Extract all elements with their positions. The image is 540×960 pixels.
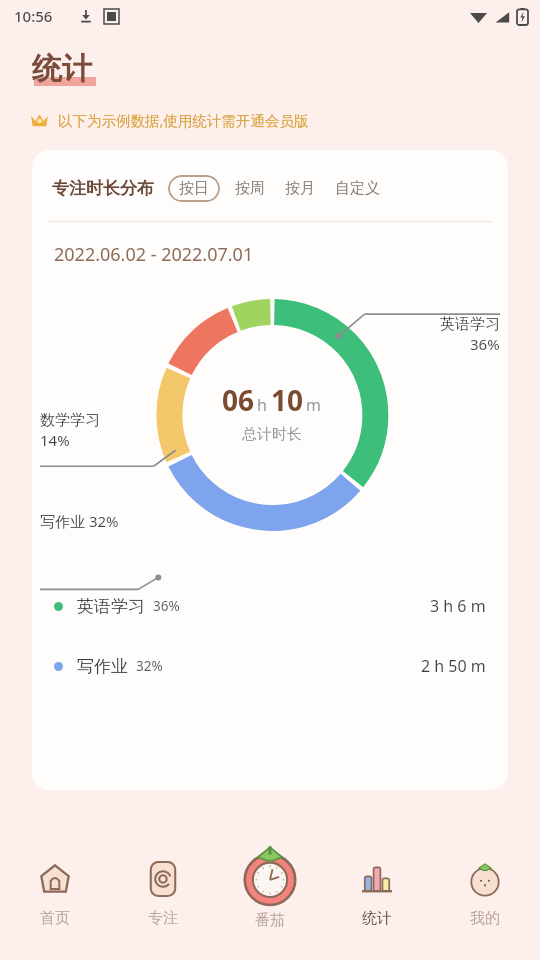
other: 我的 [467,861,503,897]
staticText: 以下为示例数据,使用统计需开通会员版 [58,110,309,130]
other: 统计 [360,862,394,896]
other: 首页 [37,861,73,897]
staticText: m [306,394,321,416]
button[interactable]: 按周 [230,174,270,203]
button[interactable]: 统计 [325,840,429,928]
staticText: 36% [470,334,500,354]
staticText: 写作业 [77,656,128,677]
staticText: 36% [153,597,180,615]
button[interactable]: 我的 [433,840,537,928]
staticText: 2 h 50 m [421,655,486,677]
button[interactable]: 按日 [168,175,220,202]
button[interactable]: 按月 [280,174,320,203]
staticText: 按周 [235,179,265,198]
button[interactable]: 专注 [111,840,215,928]
button[interactable]: 英语学习 [32,595,508,617]
staticText: 统计 [362,909,392,928]
staticText: 番茄 [255,911,285,930]
staticText: 统计 [32,50,92,88]
staticText: 3 h 6 m [430,595,486,617]
other: 番茄 [240,845,300,905]
staticText: 按日 [179,179,209,198]
staticText: 专注 [148,909,178,928]
staticText: 14% [40,430,70,450]
staticText: 我的 [470,909,500,928]
staticText: 数学学习 [40,411,100,430]
button[interactable]: 写作业 [32,655,508,677]
button[interactable]: 首页 [3,840,107,928]
staticText: 英语学习 [440,315,500,334]
staticText: 自定义 [335,179,380,198]
staticText: 写作业 32% [40,511,119,531]
staticText: 06 [222,381,255,419]
other: 专注 [146,862,180,896]
staticText: 专注时长分布 [52,178,154,199]
button[interactable]: 番茄 [218,840,322,930]
staticText: 10 [271,381,304,419]
staticText: 首页 [40,909,70,928]
staticText: 英语学习 [77,596,145,617]
staticText: 32% [136,657,163,675]
staticText: h [257,394,267,416]
staticText: 10:56 [14,6,53,26]
staticText: 按月 [285,179,315,198]
staticText: 总计时长 [242,425,302,444]
staticText: 2022.06.02 - 2022.07.01 [54,242,254,267]
button[interactable]: 自定义 [330,174,385,203]
